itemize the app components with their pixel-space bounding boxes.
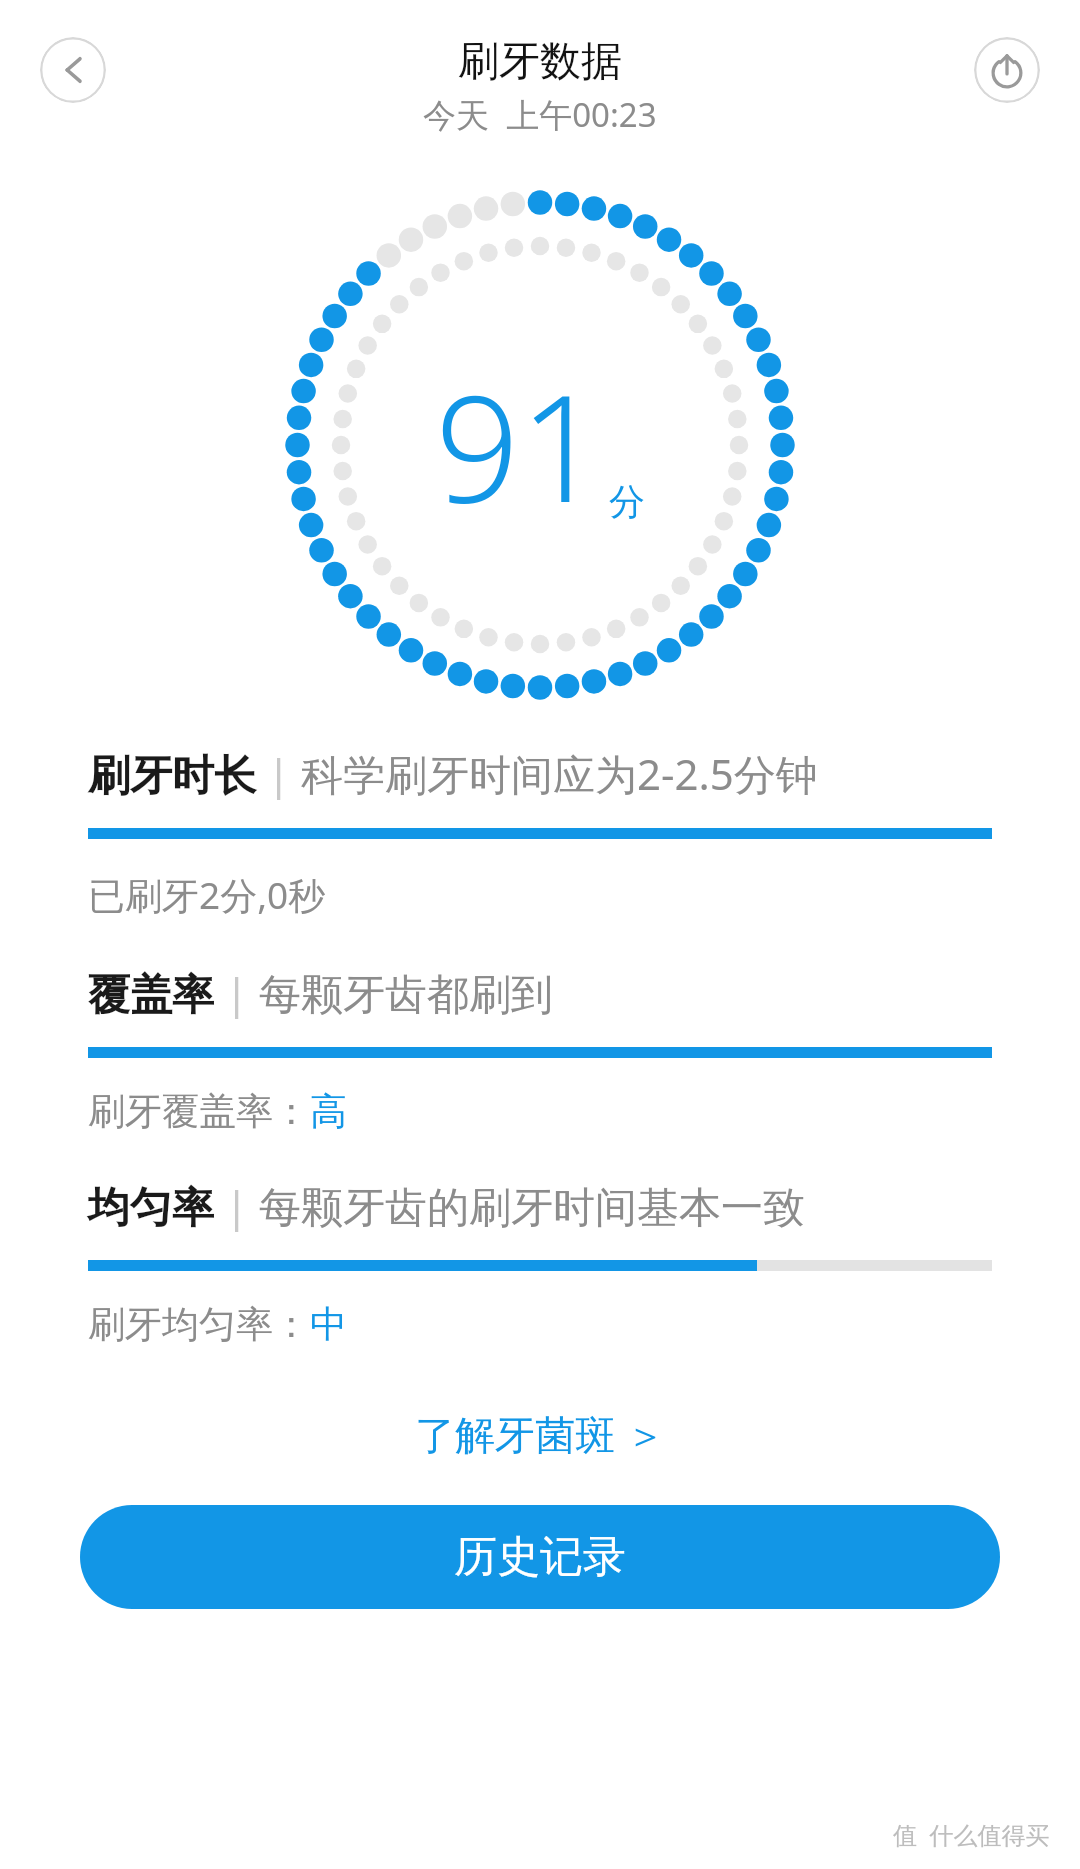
staticText: 覆盖率 | 每颗牙齿都刷到 [88, 964, 553, 1021]
staticText: 刷牙均匀率：中 [88, 1301, 347, 1348]
staticText: 已刷牙2分,0秒 [88, 869, 326, 920]
staticText: 今天 上午00:23 [423, 92, 657, 137]
staticText: 分 [609, 479, 645, 524]
button[interactable]: Share [974, 37, 1040, 103]
staticText: 均匀率 | 每颗牙齿的刷牙时间基本一致 [88, 1177, 805, 1234]
staticText: 刷牙时长 | 科学刷牙时间应为2-2.5分钟 [88, 745, 818, 802]
staticText: 值 什么值得买 [893, 1818, 1050, 1851]
staticText: 刷牙数据 [458, 36, 622, 88]
button[interactable]: 历史记录 [80, 1505, 1000, 1609]
staticText: 刷牙覆盖率：高 [88, 1088, 347, 1135]
button[interactable]: 了解牙菌斑 ＞ [391, 1396, 690, 1471]
staticText: 历史记录 [454, 1530, 626, 1584]
staticText: 了解牙菌斑 ＞ [415, 1406, 666, 1461]
staticText: 91 [435, 344, 605, 546]
button[interactable]: Back [40, 37, 106, 103]
